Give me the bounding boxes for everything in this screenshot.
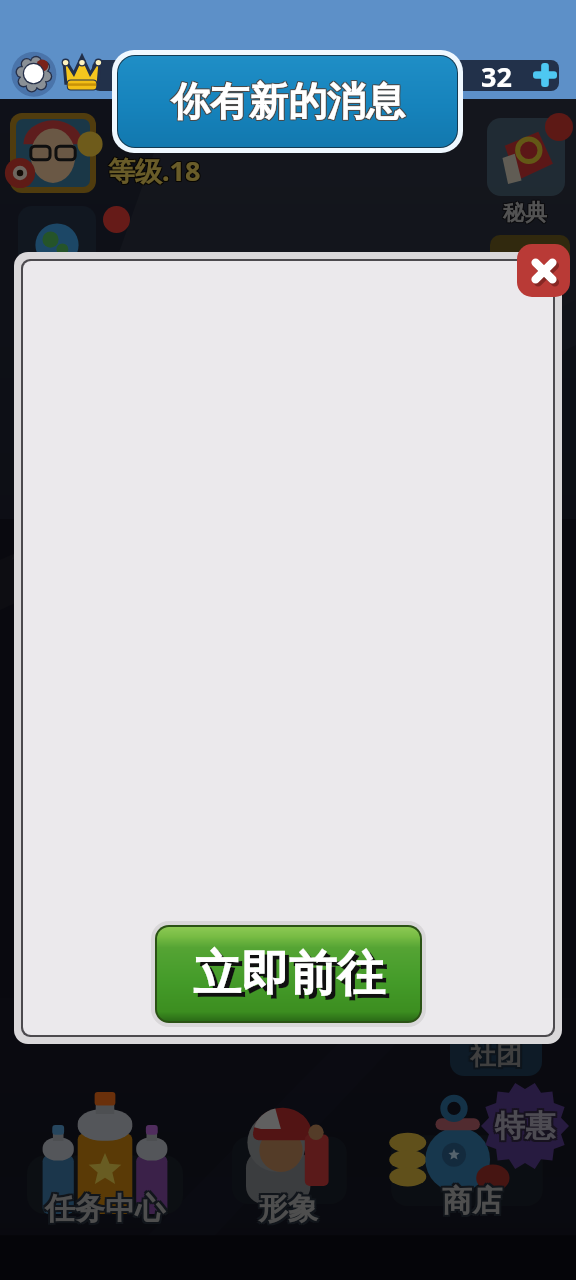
staticText: 立即前往 bbox=[193, 944, 385, 1004]
staticText: 等级.18 bbox=[108, 152, 201, 189]
staticText: 秘典 bbox=[504, 200, 548, 228]
staticText: 任务中心 bbox=[45, 1188, 165, 1226]
staticText: 任务中心 bbox=[43, 1188, 163, 1226]
button[interactable]: VIP bbox=[62, 53, 102, 93]
button[interactable] bbox=[487, 118, 565, 196]
staticText: 特惠 bbox=[497, 1107, 557, 1145]
staticText: 社团 bbox=[468, 1041, 520, 1074]
staticText: 任务中心 bbox=[47, 1188, 167, 1226]
button[interactable]: 特惠 bbox=[377, 1084, 567, 1222]
staticText: 你有新的消息 bbox=[172, 76, 406, 125]
staticText: 商店 bbox=[444, 1184, 504, 1222]
staticText: 商店 bbox=[442, 1184, 502, 1222]
staticText: 特惠 bbox=[493, 1109, 553, 1147]
staticText: 形象 bbox=[258, 1190, 318, 1228]
staticText: 商店 bbox=[444, 1180, 504, 1218]
staticText: 特惠 bbox=[495, 1105, 555, 1143]
staticText: 形象 bbox=[260, 1192, 320, 1230]
staticText: 等级.18 bbox=[107, 153, 200, 190]
staticText: 32 bbox=[481, 58, 512, 92]
button[interactable]: Settings bbox=[11, 50, 55, 94]
button[interactable]: 任务中心 bbox=[15, 1092, 195, 1230]
staticText: 任务中心 bbox=[43, 1192, 163, 1230]
staticText: 你有新的消息 bbox=[172, 77, 406, 126]
staticText: 社团 bbox=[470, 1041, 522, 1074]
staticText: 秘典 bbox=[502, 200, 546, 228]
staticText: 特惠 bbox=[495, 1107, 555, 1145]
staticText: 社团 bbox=[470, 1037, 522, 1070]
staticText: 等级.18 bbox=[107, 152, 200, 189]
staticText: 特惠 bbox=[497, 1109, 557, 1147]
staticText: 秘典 bbox=[504, 198, 548, 226]
staticText: 你有新的消息 bbox=[171, 76, 405, 125]
staticText: 社团 bbox=[470, 1039, 522, 1072]
staticText: 秘典 bbox=[503, 198, 547, 226]
staticText: 你有新的消息 bbox=[171, 78, 405, 127]
staticText: 任务中心 bbox=[47, 1190, 167, 1228]
staticText: 秘典 bbox=[504, 199, 548, 227]
button[interactable]: 立即前往 bbox=[157, 927, 420, 1021]
staticText: 任务中心 bbox=[45, 1192, 165, 1230]
staticText: 秘典 bbox=[502, 199, 546, 227]
button[interactable]: 社团 bbox=[450, 1020, 542, 1076]
staticText: 形象 bbox=[256, 1192, 316, 1230]
staticText: 你有新的消息 bbox=[170, 76, 404, 125]
staticText: 商店 bbox=[440, 1180, 500, 1218]
staticText: 秘典 bbox=[502, 198, 546, 226]
staticText: 你有新的消息 bbox=[172, 78, 406, 127]
staticText: 形象 bbox=[258, 1188, 318, 1226]
staticText: 秘典 bbox=[503, 200, 547, 228]
staticText: 商店 bbox=[442, 1180, 502, 1218]
staticText: 形象 bbox=[258, 1192, 318, 1230]
button[interactable]: 形象 bbox=[208, 1092, 368, 1230]
staticText: 特惠 bbox=[497, 1105, 557, 1143]
button[interactable] bbox=[18, 206, 96, 284]
staticText: 任务中心 bbox=[45, 1190, 165, 1228]
staticText: 社团 bbox=[472, 1037, 524, 1070]
staticText: 任务中心 bbox=[47, 1192, 167, 1230]
staticText: 商店 bbox=[444, 1182, 504, 1220]
staticText: 形象 bbox=[256, 1190, 316, 1228]
staticText: 你有新的消息 bbox=[170, 78, 404, 127]
staticText: 等级.18 bbox=[109, 151, 202, 188]
staticText: 社团 bbox=[468, 1039, 520, 1072]
staticText: 等级.18 bbox=[109, 153, 202, 190]
staticText: 你有新的消息 bbox=[170, 77, 404, 126]
staticText: 等级.18 bbox=[107, 151, 200, 188]
staticText: 社团 bbox=[472, 1039, 524, 1072]
staticText: 形象 bbox=[260, 1188, 320, 1226]
button[interactable] bbox=[16, 119, 90, 187]
button[interactable]: 你有新的消息 bbox=[118, 56, 457, 147]
staticText: 秘典 bbox=[503, 199, 547, 227]
button[interactable]: Add bbox=[529, 59, 561, 91]
staticText: 任务中心 bbox=[43, 1190, 163, 1228]
staticText: 社团 bbox=[468, 1037, 520, 1070]
staticText: 社团 bbox=[472, 1041, 524, 1074]
staticText: 立即前往 bbox=[197, 948, 389, 1008]
staticText: 特惠 bbox=[493, 1107, 553, 1145]
button[interactable]: Close bbox=[517, 244, 570, 297]
staticText: 特惠 bbox=[493, 1105, 553, 1143]
staticText: 商店 bbox=[440, 1184, 500, 1222]
staticText: 你有新的消息 bbox=[171, 77, 405, 126]
staticText: 形象 bbox=[256, 1188, 316, 1226]
staticText: 特惠 bbox=[495, 1109, 555, 1147]
staticText: 等级.18 bbox=[108, 151, 201, 188]
staticText: 等级.18 bbox=[108, 153, 201, 190]
staticText: 等级.18 bbox=[109, 152, 202, 189]
staticText: 商店 bbox=[440, 1182, 500, 1220]
staticText: 商店 bbox=[442, 1182, 502, 1220]
staticText: 形象 bbox=[260, 1190, 320, 1228]
